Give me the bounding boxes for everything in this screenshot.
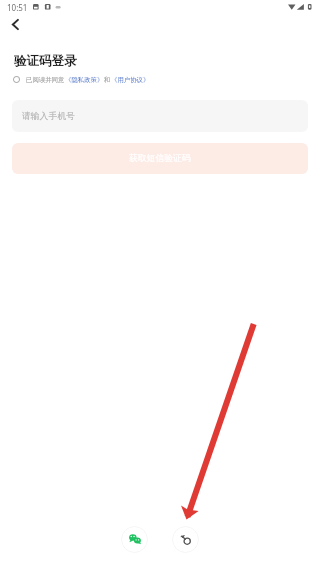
button[interactable]: Alipay login bbox=[172, 526, 199, 553]
button[interactable]: WeChat login bbox=[121, 526, 148, 553]
button[interactable]: Back bbox=[4, 14, 26, 35]
staticText: 和 bbox=[104, 76, 111, 84]
staticText: 验证码登录 bbox=[14, 53, 77, 69]
button[interactable]: 请输入手机号 bbox=[12, 100, 308, 132]
staticText: 请输入手机号 bbox=[22, 111, 75, 122]
staticText: 10:51 bbox=[7, 2, 28, 13]
button[interactable]: 已阅读并同意 bbox=[13, 74, 150, 86]
button[interactable]: 获取短信验证码 bbox=[12, 143, 308, 174]
staticText: 获取短信验证码 bbox=[129, 153, 191, 164]
staticText: 已阅读并同意 bbox=[26, 76, 65, 84]
staticText: 《隐私政策》 bbox=[65, 76, 104, 84]
staticText: 《用户协议》 bbox=[111, 76, 150, 84]
